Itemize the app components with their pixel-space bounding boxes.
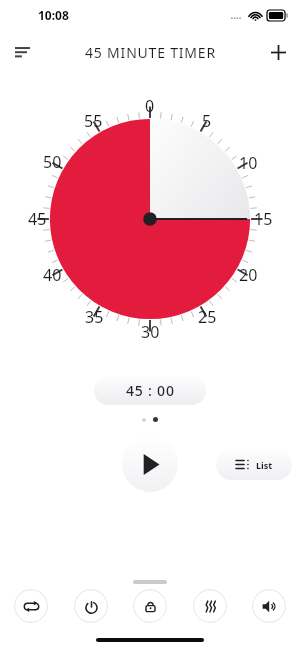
staticText: 35 — [85, 306, 104, 328]
staticText: 20 — [239, 264, 258, 286]
staticText: 15 — [254, 208, 273, 230]
staticText: 5 — [202, 110, 212, 132]
button[interactable]: List — [216, 449, 292, 480]
staticText: List — [256, 459, 273, 471]
staticText: 45 — [28, 208, 47, 230]
staticText: 10 — [239, 152, 258, 174]
button[interactable]: Lock — [133, 589, 167, 623]
button[interactable]: Add timer — [256, 30, 300, 74]
staticText: 50 — [43, 151, 62, 173]
button[interactable]: Start timer — [122, 436, 178, 492]
staticText: 0 — [145, 95, 155, 117]
staticText: 45 : 00 — [126, 381, 175, 400]
staticText: 30 — [141, 321, 160, 343]
button[interactable]: Reset — [74, 589, 108, 623]
staticText: 10:08 — [38, 7, 69, 23]
staticText: 45 MINUTE TIMER — [85, 43, 216, 62]
staticText: 40 — [43, 264, 62, 286]
button[interactable]: Sound — [252, 589, 286, 623]
button[interactable]: 45 : 00 — [94, 376, 206, 405]
button[interactable]: Vibrate — [193, 589, 227, 623]
button[interactable]: Menu — [0, 30, 44, 74]
button[interactable]: Repeat — [14, 589, 48, 623]
staticText: 25 — [198, 306, 217, 328]
staticText: 55 — [84, 110, 103, 132]
